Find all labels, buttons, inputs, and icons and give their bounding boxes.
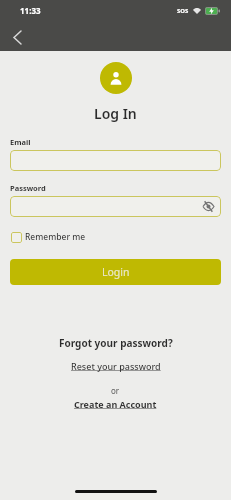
button[interactable] bbox=[10, 196, 221, 217]
staticText: Password bbox=[10, 183, 46, 193]
staticText: Log In bbox=[94, 104, 137, 123]
button[interactable] bbox=[10, 150, 221, 171]
staticText: 11:33 bbox=[20, 5, 41, 16]
staticText: or bbox=[111, 385, 120, 396]
staticText: Email bbox=[10, 137, 31, 147]
staticText: Forgot your password? bbox=[59, 336, 173, 350]
button[interactable]: Remember me bbox=[10, 231, 86, 243]
button[interactable] bbox=[5, 25, 29, 49]
button[interactable]: Create an Account bbox=[74, 398, 157, 410]
button[interactable]: Reset your password bbox=[71, 360, 161, 372]
staticText: Remember me bbox=[25, 231, 86, 243]
staticText: Login bbox=[102, 265, 130, 279]
staticText: SOS bbox=[177, 7, 189, 15]
button[interactable]: Login bbox=[10, 259, 221, 285]
